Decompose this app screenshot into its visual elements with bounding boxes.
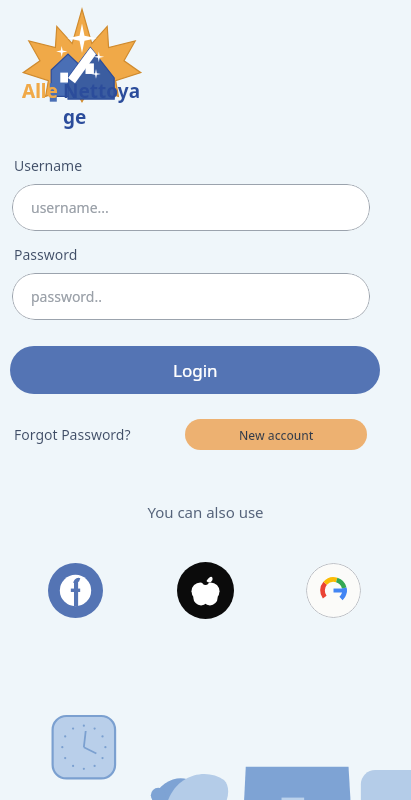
button[interactable]: Sign in with Google xyxy=(306,563,361,618)
staticText: password.. xyxy=(31,287,102,306)
staticText: Nettoyage xyxy=(63,78,152,130)
button[interactable]: Login xyxy=(10,346,380,394)
staticText: Username xyxy=(14,156,83,175)
staticText: Login xyxy=(173,359,218,382)
staticText: Forgot Password? xyxy=(14,425,131,444)
staticText: username... xyxy=(31,198,109,217)
staticText: Password xyxy=(14,245,78,264)
button[interactable]: password.. xyxy=(12,273,370,320)
staticText: Alle xyxy=(22,78,58,104)
button[interactable]: Forgot Password? xyxy=(14,425,131,444)
staticText: New account xyxy=(239,427,314,443)
button[interactable]: username... xyxy=(12,184,370,231)
button[interactable]: Sign in with Facebook xyxy=(48,563,103,618)
button[interactable]: Sign in with Apple xyxy=(177,562,234,619)
staticText: You can also use xyxy=(0,502,411,522)
button[interactable]: New account xyxy=(185,419,367,450)
